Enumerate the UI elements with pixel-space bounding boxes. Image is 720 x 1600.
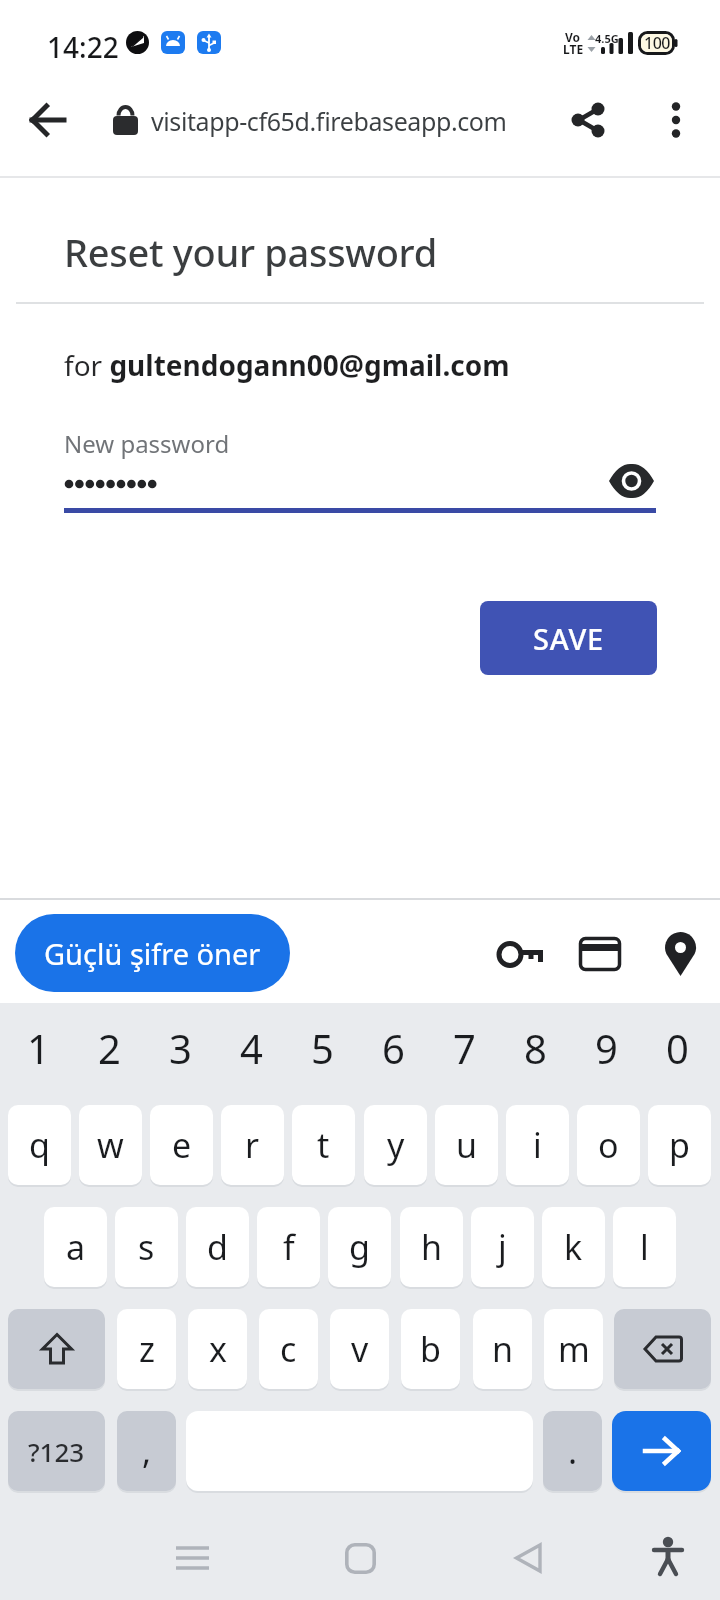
staticText: 0 <box>666 1021 689 1075</box>
staticText: 3 <box>169 1021 192 1075</box>
staticText: f <box>283 1224 295 1270</box>
button[interactable]: q <box>8 1105 71 1185</box>
staticText: r <box>245 1122 260 1168</box>
staticText: a <box>66 1224 86 1270</box>
staticText: u <box>456 1122 478 1168</box>
button[interactable]: 9 <box>571 1020 642 1076</box>
button[interactable]: 8 <box>500 1020 571 1076</box>
button[interactable]: v <box>330 1309 389 1389</box>
button[interactable]: p <box>648 1105 711 1185</box>
button[interactable] <box>8 1309 105 1389</box>
staticText: m <box>558 1326 590 1372</box>
button[interactable]: n <box>473 1309 532 1389</box>
staticText: 100 <box>644 32 670 53</box>
staticText: 1 <box>27 1021 50 1075</box>
button[interactable]: j <box>471 1207 534 1287</box>
staticText: g <box>349 1224 370 1270</box>
button[interactable] <box>328 1534 392 1582</box>
staticText: , <box>142 1428 152 1474</box>
button[interactable]: h <box>400 1207 463 1287</box>
staticText: 5 <box>311 1021 334 1075</box>
staticText: e <box>172 1122 192 1168</box>
button[interactable]: z <box>117 1309 176 1389</box>
button[interactable] <box>20 92 76 148</box>
button[interactable]: 1 <box>3 1020 74 1076</box>
staticText: s <box>138 1224 155 1270</box>
staticText: t <box>317 1122 330 1168</box>
button[interactable]: g <box>328 1207 391 1287</box>
staticText: q <box>29 1122 50 1168</box>
button[interactable]: w <box>79 1105 142 1185</box>
button[interactable]: l <box>613 1207 676 1287</box>
staticText: b <box>420 1326 441 1372</box>
staticText: Reset your password <box>64 226 437 278</box>
staticText: . <box>568 1428 578 1474</box>
button[interactable]: 2 <box>74 1020 145 1076</box>
button[interactable] <box>612 1411 711 1491</box>
staticText: c <box>280 1326 297 1372</box>
button[interactable] <box>603 455 659 507</box>
button[interactable]: f <box>257 1207 320 1287</box>
button[interactable] <box>649 923 711 985</box>
button[interactable] <box>160 1534 224 1582</box>
button[interactable] <box>496 1534 560 1582</box>
button[interactable]: i <box>506 1105 569 1185</box>
staticText: n <box>492 1326 514 1372</box>
button[interactable]: 3 <box>145 1020 216 1076</box>
button[interactable]: ?123 <box>8 1411 105 1491</box>
staticText: 4 <box>240 1021 263 1075</box>
button[interactable]: a <box>44 1207 107 1287</box>
button[interactable] <box>489 923 551 985</box>
button[interactable] <box>569 923 631 985</box>
staticText: z <box>139 1326 155 1372</box>
staticText: New password <box>64 427 230 460</box>
button[interactable]: 6 <box>358 1020 429 1076</box>
button[interactable]: c <box>259 1309 318 1389</box>
staticText: visitapp-cf65d.firebaseapp.com <box>151 104 507 138</box>
staticText: 2 <box>98 1021 121 1075</box>
staticText: w <box>97 1122 124 1168</box>
button[interactable]: 0 <box>642 1020 713 1076</box>
staticText: 14:22 <box>47 28 119 66</box>
button[interactable] <box>560 92 616 148</box>
button[interactable] <box>648 92 704 148</box>
button[interactable]: t <box>292 1105 355 1185</box>
staticText: Vo <box>565 29 581 45</box>
button[interactable]: r <box>221 1105 284 1185</box>
button[interactable]: y <box>364 1105 427 1185</box>
button[interactable]: . <box>543 1411 602 1491</box>
button[interactable]: SAVE <box>480 601 657 675</box>
button[interactable]: d <box>186 1207 249 1287</box>
button[interactable]: u <box>435 1105 498 1185</box>
button[interactable]: o <box>577 1105 640 1185</box>
staticText: 9 <box>595 1021 618 1075</box>
button[interactable]: , <box>117 1411 176 1491</box>
staticText: 8 <box>524 1021 547 1075</box>
button[interactable]: k <box>542 1207 605 1287</box>
staticText: x <box>209 1326 227 1372</box>
button[interactable]: x <box>188 1309 247 1389</box>
button[interactable]: 4 <box>216 1020 287 1076</box>
button[interactable] <box>614 1309 711 1389</box>
staticText: 6 <box>382 1021 405 1075</box>
staticText: k <box>564 1224 583 1270</box>
button[interactable]: s <box>115 1207 178 1287</box>
button[interactable]: Güçlü şifre öner <box>15 914 290 992</box>
button[interactable]: m <box>544 1309 603 1389</box>
staticText: o <box>598 1122 619 1168</box>
button[interactable]: b <box>401 1309 460 1389</box>
button[interactable]: 5 <box>287 1020 358 1076</box>
button[interactable] <box>636 1530 700 1582</box>
staticText: 7 <box>453 1021 476 1075</box>
staticText: i <box>533 1122 542 1168</box>
staticText: p <box>669 1122 690 1168</box>
staticText: ?123 <box>28 1434 85 1469</box>
staticText: d <box>207 1224 228 1270</box>
staticText: for gultendogann00@gmail.com <box>64 346 510 384</box>
button[interactable]: e <box>150 1105 213 1185</box>
staticText: 4.5G <box>595 31 619 46</box>
staticText: y <box>387 1122 405 1168</box>
button[interactable]: 7 <box>429 1020 500 1076</box>
staticText: v <box>351 1326 369 1372</box>
